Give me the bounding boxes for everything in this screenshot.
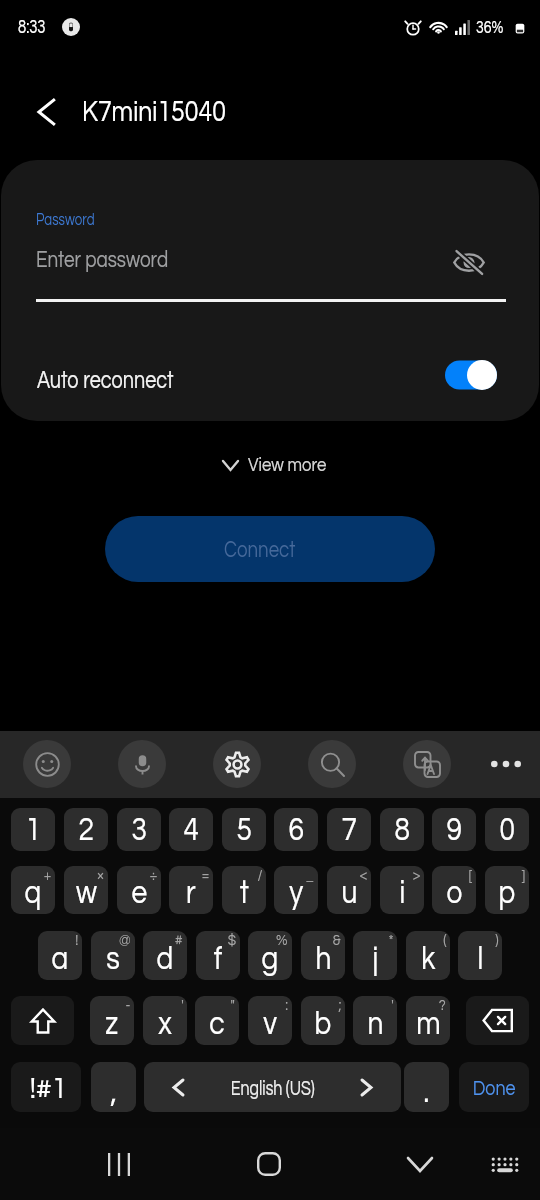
button[interactable]: y — [274, 866, 318, 914]
button[interactable]: d — [143, 931, 187, 980]
button[interactable]: Translate — [403, 740, 451, 788]
button[interactable]: m — [406, 996, 450, 1045]
button[interactable]: g — [248, 931, 292, 980]
button[interactable]: s — [91, 931, 135, 980]
staticText: 7 — [341, 813, 358, 847]
button[interactable]: Hide keyboard — [481, 1140, 529, 1188]
button[interactable]: Show password — [445, 238, 493, 286]
staticText: u — [341, 876, 358, 910]
button[interactable]: English (US) — [144, 1062, 401, 1112]
button[interactable]: k — [406, 931, 450, 980]
button[interactable]: w — [64, 866, 108, 914]
staticText: v — [263, 1007, 278, 1041]
button[interactable]: 8 — [380, 808, 424, 851]
button[interactable]: Settings — [213, 740, 261, 788]
button[interactable]: 7 — [327, 808, 371, 851]
button[interactable]: 5 — [222, 808, 266, 851]
button[interactable]: Navigate up — [18, 84, 74, 140]
button[interactable]: h — [301, 931, 345, 980]
button[interactable]: Recents — [95, 1140, 143, 1188]
button[interactable]: n — [353, 996, 397, 1045]
button[interactable]: !#1 — [11, 1062, 81, 1112]
staticText: a — [51, 942, 68, 976]
staticText: ] — [521, 867, 526, 883]
staticText: !#1 — [30, 1073, 67, 1104]
staticText: : — [285, 997, 289, 1013]
staticText: p — [498, 876, 515, 910]
button[interactable]: Shift — [11, 996, 74, 1045]
button[interactable]: Done — [459, 1062, 529, 1112]
staticText: f — [214, 942, 223, 976]
staticText: 3 — [131, 813, 147, 847]
button[interactable]: j — [353, 931, 397, 980]
button[interactable]: 2 — [64, 808, 108, 851]
staticText: Auto reconnect — [37, 367, 173, 393]
staticText: 2 — [78, 813, 94, 847]
staticText: " — [230, 997, 235, 1013]
button[interactable]: , — [91, 1062, 136, 1112]
staticText: 6 — [288, 813, 305, 847]
button[interactable]: l — [458, 931, 502, 980]
button[interactable]: q — [11, 866, 55, 914]
button[interactable]: 0 — [485, 808, 529, 851]
staticText: × — [97, 867, 104, 883]
staticText: 0 — [499, 813, 516, 847]
staticText: ! — [75, 932, 79, 948]
button[interactable]: x — [143, 996, 187, 1045]
button[interactable]: 4 — [169, 808, 213, 851]
staticText: ) — [495, 932, 499, 948]
staticText: 8:33 — [18, 17, 46, 37]
staticText: z — [105, 1007, 119, 1041]
staticText: s — [106, 942, 120, 976]
staticText: Enter password — [36, 247, 169, 272]
button[interactable]: Back — [396, 1140, 444, 1188]
staticText: c — [209, 1007, 225, 1041]
staticText: , — [111, 1075, 117, 1109]
button[interactable]: View more — [211, 440, 335, 490]
button[interactable]: e — [117, 866, 161, 914]
staticText: Connect — [224, 537, 296, 562]
staticText: % — [276, 932, 288, 948]
staticText: Password — [36, 211, 95, 229]
staticText: m — [416, 1007, 441, 1041]
button[interactable]: Search — [308, 740, 356, 788]
staticText: 4 — [183, 813, 199, 847]
button[interactable]: 1 — [11, 808, 55, 851]
button[interactable]: r — [169, 866, 213, 914]
button[interactable]: Emoji — [23, 740, 71, 788]
button[interactable]: a — [38, 931, 82, 980]
button[interactable]: o — [432, 866, 476, 914]
button[interactable]: Auto reconnect — [1, 345, 539, 405]
button[interactable]: Voice input — [118, 740, 166, 788]
staticText: _ — [306, 867, 314, 883]
button[interactable]: t — [222, 866, 266, 914]
staticText: # — [175, 932, 183, 948]
staticText: + — [44, 867, 51, 883]
button[interactable]: v — [248, 996, 292, 1045]
button[interactable]: 6 — [274, 808, 318, 851]
button[interactable]: z — [90, 996, 134, 1045]
button[interactable]: Home — [245, 1140, 293, 1188]
staticText: ? — [439, 997, 446, 1013]
button[interactable]: . — [404, 1062, 449, 1112]
button[interactable]: p — [485, 866, 529, 914]
staticText: Done — [473, 1077, 516, 1099]
staticText: x — [158, 1007, 172, 1041]
button[interactable]: Connect — [105, 516, 435, 582]
button[interactable]: u — [327, 866, 371, 914]
staticText: English (US) — [231, 1077, 315, 1099]
staticText: K7mini15040 — [82, 97, 226, 127]
staticText: j — [372, 942, 378, 976]
button[interactable]: f — [196, 931, 240, 980]
button[interactable]: i — [380, 866, 424, 914]
staticText: l — [477, 942, 483, 976]
button[interactable]: More options — [484, 752, 528, 776]
staticText: 9 — [446, 813, 463, 847]
staticText: 1 — [25, 813, 42, 847]
staticText: 5 — [236, 813, 252, 847]
button[interactable]: 3 — [117, 808, 161, 851]
button[interactable]: Backspace — [466, 996, 529, 1045]
button[interactable]: b — [301, 996, 345, 1045]
button[interactable]: 9 — [432, 808, 476, 851]
button[interactable]: c — [195, 996, 239, 1045]
